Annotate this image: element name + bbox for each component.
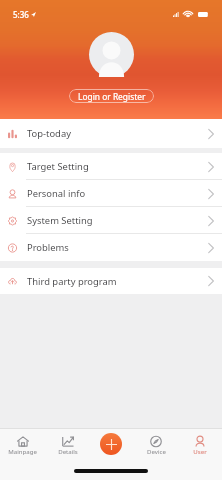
staticText: Mainpage — [8, 447, 37, 455]
staticText: User — [193, 447, 207, 455]
button[interactable]: Details — [45, 436, 90, 466]
button[interactable]: Target Setting — [0, 153, 222, 180]
staticText: 5:36 — [13, 9, 29, 20]
button[interactable]: Third party program — [0, 268, 222, 294]
staticText: Personal info — [27, 187, 86, 200]
button[interactable]: System Setting — [0, 207, 222, 234]
staticText: System Setting — [27, 214, 93, 227]
button[interactable]: Device — [134, 436, 178, 466]
button[interactable]: User — [178, 436, 222, 466]
staticText: Problems — [27, 241, 69, 254]
staticText: Third party program — [27, 275, 117, 288]
button[interactable]: Mainpage — [0, 436, 45, 466]
staticText: Target Setting — [27, 160, 89, 173]
button[interactable]: Personal info — [0, 180, 222, 207]
button[interactable]: Add — [100, 433, 122, 455]
button[interactable]: Top-today — [0, 119, 222, 148]
button[interactable]: Problems — [0, 234, 222, 261]
button[interactable]: Login or Register — [69, 89, 154, 103]
staticText: Details — [58, 447, 78, 455]
staticText: Top-today — [27, 127, 71, 140]
staticText: Device — [147, 447, 166, 455]
staticText: Login or Register — [78, 91, 146, 102]
